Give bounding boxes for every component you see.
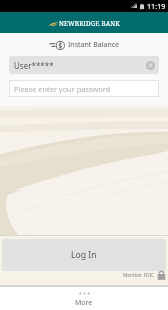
button[interactable]: Instant Balance: [47, 38, 122, 52]
button[interactable]: Clear username: [146, 61, 155, 70]
button[interactable]: Please enter your password: [9, 80, 159, 97]
button[interactable]: Log In: [2, 239, 166, 271]
staticText: Member FDIC: [123, 272, 155, 279]
staticText: User*****: [14, 60, 54, 71]
button[interactable]: User*****: [9, 56, 159, 74]
staticText: Instant Balance: [68, 40, 120, 50]
staticText: 11:19: [147, 1, 166, 11]
staticText: Please enter your password: [14, 84, 111, 94]
staticText: Log In: [71, 249, 97, 261]
staticText: NEWBRIDGE BANK: [59, 19, 120, 28]
button[interactable]: More: [75, 292, 93, 308]
staticText: More: [75, 298, 93, 308]
